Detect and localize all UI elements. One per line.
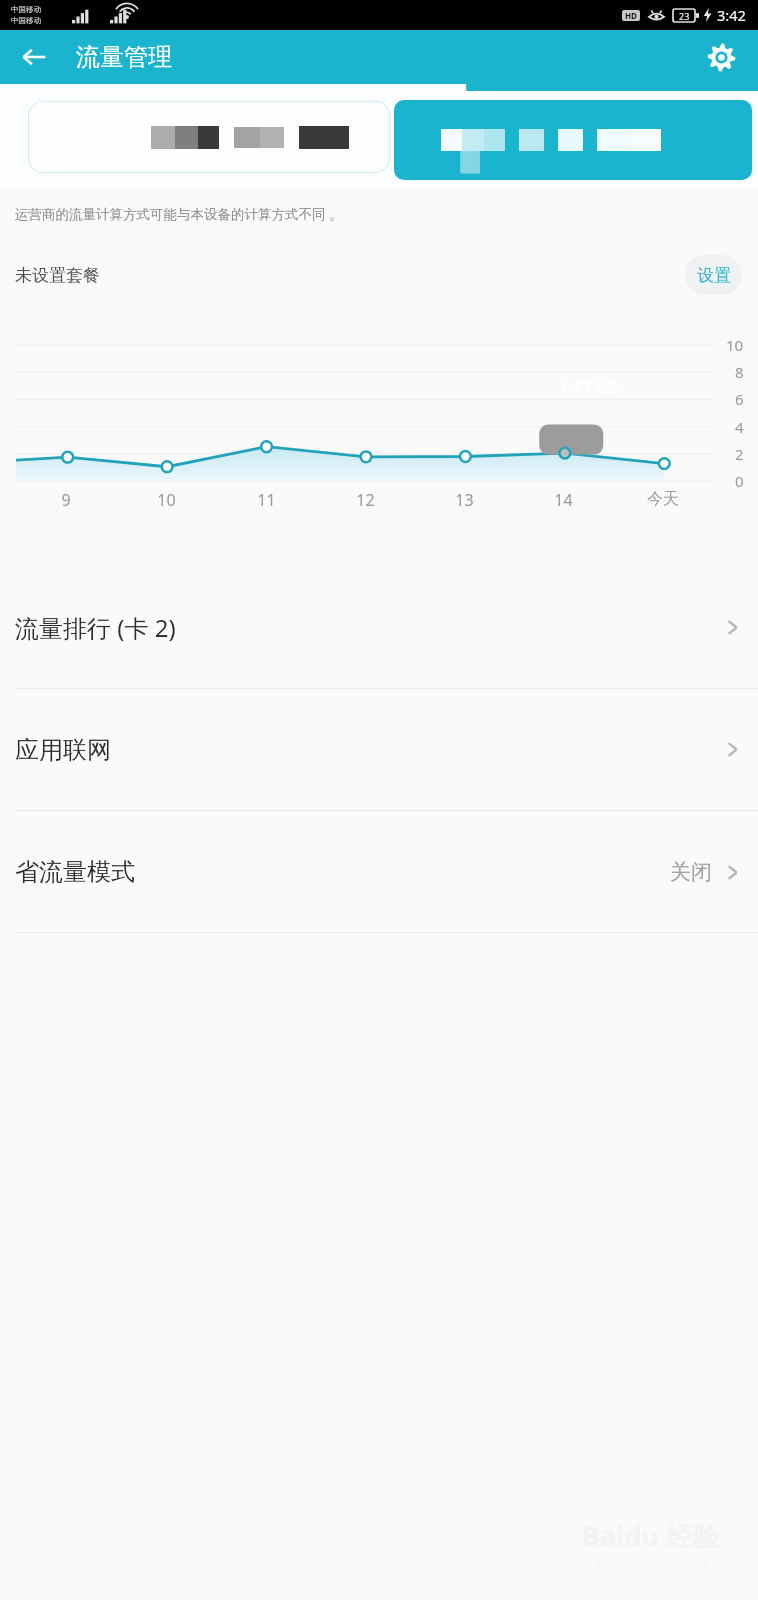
button[interactable]: 省流量模式 <box>0 811 758 932</box>
staticText: 12 <box>356 489 375 511</box>
staticText: 23 <box>679 10 690 22</box>
staticText: 设置 <box>697 265 731 286</box>
staticText: 今天 <box>647 489 679 509</box>
staticText: 14 <box>554 489 573 511</box>
staticText: 关闭 <box>670 859 712 885</box>
button[interactable]: 流量排行 (卡 2) <box>0 567 758 688</box>
staticText: 10 <box>726 335 744 355</box>
staticText: HD <box>625 10 637 21</box>
staticText: 6 <box>735 389 744 409</box>
staticText: 9 <box>61 489 71 511</box>
staticText: 未设置套餐 <box>15 265 100 286</box>
staticText: Baidu 经验 <box>582 1517 720 1554</box>
staticText: 4 <box>735 417 744 437</box>
staticText: 11 <box>257 489 276 511</box>
staticText: 8 <box>735 362 744 382</box>
staticText: 流量排行 (卡 2) <box>15 611 176 644</box>
button[interactable] <box>394 100 752 180</box>
staticText: 应用联网 <box>15 735 111 765</box>
staticText: 0 <box>735 471 744 491</box>
staticText: 中国移动 <box>11 16 41 25</box>
button[interactable]: 设置 <box>685 255 742 295</box>
staticText: 省流量模式 <box>15 857 135 887</box>
staticText: 13 <box>455 489 474 511</box>
button[interactable]: Back <box>10 33 58 81</box>
staticText: 中国移动 <box>11 5 41 14</box>
button[interactable]: Settings <box>698 34 744 80</box>
staticText: 运营商的流量计算方式可能与本设备的计算方式不同 。 <box>15 205 343 223</box>
staticText: 流量管理 <box>76 42 172 72</box>
button[interactable] <box>28 101 390 173</box>
staticText: 10 <box>157 489 176 511</box>
staticText: 2 <box>735 444 744 464</box>
button[interactable]: 应用联网 <box>0 689 758 810</box>
staticText: 3:42 <box>717 5 746 25</box>
